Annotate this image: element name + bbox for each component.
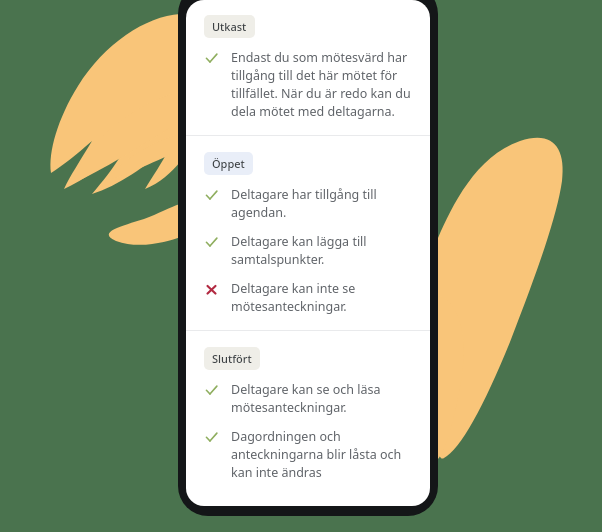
button[interactable]: Tillgängligt [186, 186, 430, 221]
button[interactable]: Tillgängligt [186, 428, 430, 481]
staticText: Öppet [212, 156, 245, 171]
button[interactable]: Inte tillgängligt [186, 280, 430, 315]
other: Tillgängligt [206, 237, 217, 248]
staticText: Endast du som mötesvärd har tillgång til… [231, 49, 416, 120]
button[interactable]: Utkast [204, 15, 255, 38]
button[interactable]: Tillgängligt [186, 49, 430, 120]
staticText: Utkast [212, 19, 247, 34]
other: Tillgängligt [206, 190, 217, 201]
other: Tillgängligt [206, 432, 217, 443]
button[interactable]: Slutfört [204, 347, 260, 370]
other: Tillgängligt [206, 53, 217, 64]
staticText: Dagordningen och anteckningarna blir lås… [231, 428, 416, 481]
staticText: Deltagare kan lägga till samtalspunkter. [231, 233, 416, 268]
button[interactable]: Tillgängligt [186, 233, 430, 268]
staticText: Deltagare har tillgång till agendan. [231, 186, 416, 221]
button[interactable]: Tillgängligt [186, 381, 430, 416]
other: Tillgängligt [206, 385, 217, 396]
other: Inte tillgängligt [206, 284, 217, 295]
button[interactable]: Öppet [204, 152, 253, 175]
staticText: Slutfört [212, 351, 252, 366]
staticText: Deltagare kan inte se mötesanteckningar. [231, 280, 416, 315]
staticText: Deltagare kan se och läsa mötesantecknin… [231, 381, 416, 416]
